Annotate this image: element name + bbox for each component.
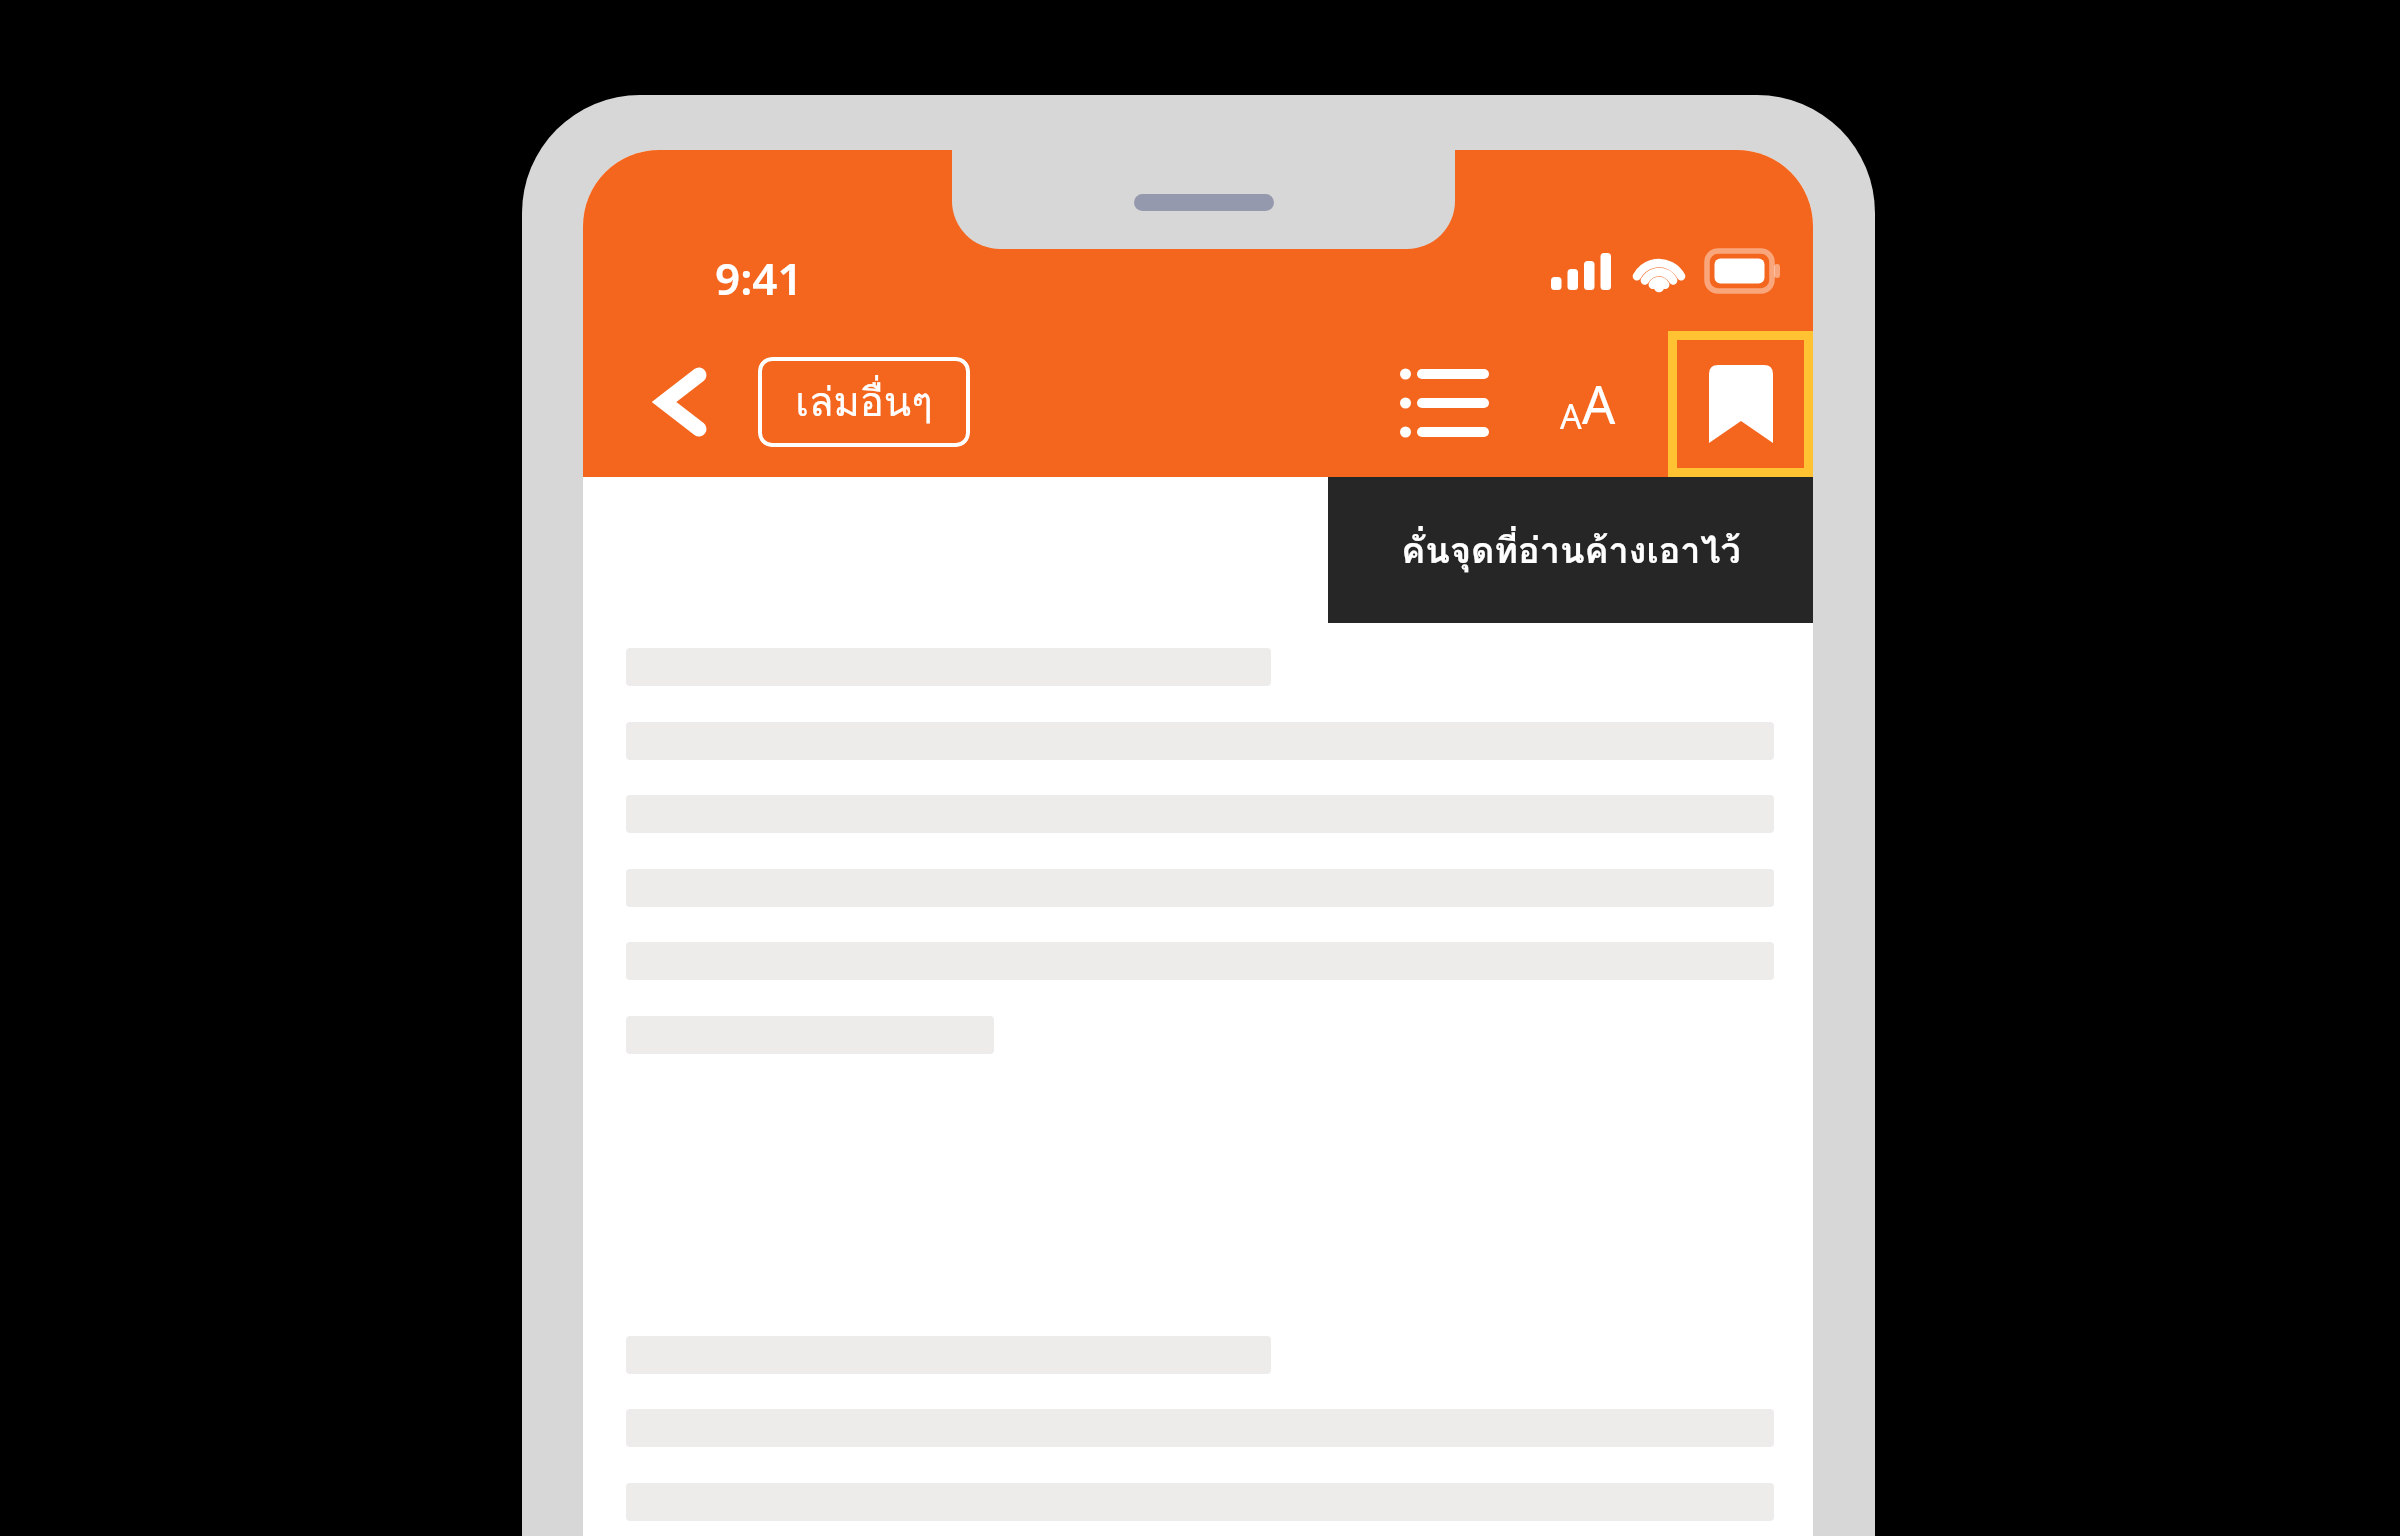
button[interactable]: Text size (1533, 353, 1643, 453)
staticText: คั่นจุดที่อ่านค้างเอาไว้ (1401, 522, 1741, 579)
button[interactable]: เล่มอื่นๆ (758, 357, 970, 447)
button[interactable]: Table of contents (1388, 353, 1498, 453)
staticText: เล่มอื่นๆ (795, 370, 933, 434)
staticText: A (1582, 368, 1616, 439)
button[interactable]: Back (631, 352, 731, 452)
staticText: A (1560, 393, 1582, 439)
button[interactable]: Bookmark (1668, 331, 1813, 477)
staticText: 9:41 (715, 248, 803, 308)
